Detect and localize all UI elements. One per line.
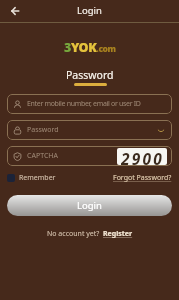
- button[interactable]: Login: [7, 195, 172, 216]
- button[interactable]: Register: [103, 229, 133, 239]
- button[interactable]: Refresh captcha: [117, 148, 167, 165]
- staticText: Enter mobile number, email or user ID: [27, 99, 141, 109]
- staticText: 2900: [121, 148, 164, 165]
- staticText: 3YOK.com: [64, 39, 116, 53]
- staticText: Login: [77, 4, 102, 17]
- button[interactable]: Password: [66, 68, 114, 86]
- button[interactable]: Forgot Password?: [113, 173, 172, 183]
- staticText: Remember: [19, 173, 56, 183]
- button[interactable]: CAPTCHA: [7, 146, 172, 166]
- staticText: Password: [66, 68, 114, 82]
- button[interactable]: Back: [6, 2, 24, 20]
- staticText: Password: [27, 125, 59, 135]
- button[interactable]: Enter mobile number, email or user ID: [7, 94, 172, 114]
- button[interactable]: Show password: [154, 124, 167, 137]
- staticText: Login: [77, 199, 102, 212]
- staticText: CAPTCHA: [27, 151, 58, 161]
- button[interactable]: Remember: [7, 173, 56, 183]
- staticText: No account yet?: [47, 229, 100, 239]
- button[interactable]: Password: [7, 120, 172, 140]
